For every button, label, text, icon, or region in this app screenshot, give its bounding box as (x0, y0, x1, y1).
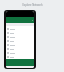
staticText: Explore Network (22, 3, 43, 7)
button[interactable] (6, 27, 34, 31)
button[interactable] (6, 43, 34, 47)
button[interactable] (6, 39, 34, 43)
button[interactable] (6, 55, 34, 59)
button[interactable] (6, 51, 34, 55)
button[interactable] (6, 35, 34, 39)
button[interactable] (6, 47, 34, 51)
button[interactable] (6, 31, 34, 35)
